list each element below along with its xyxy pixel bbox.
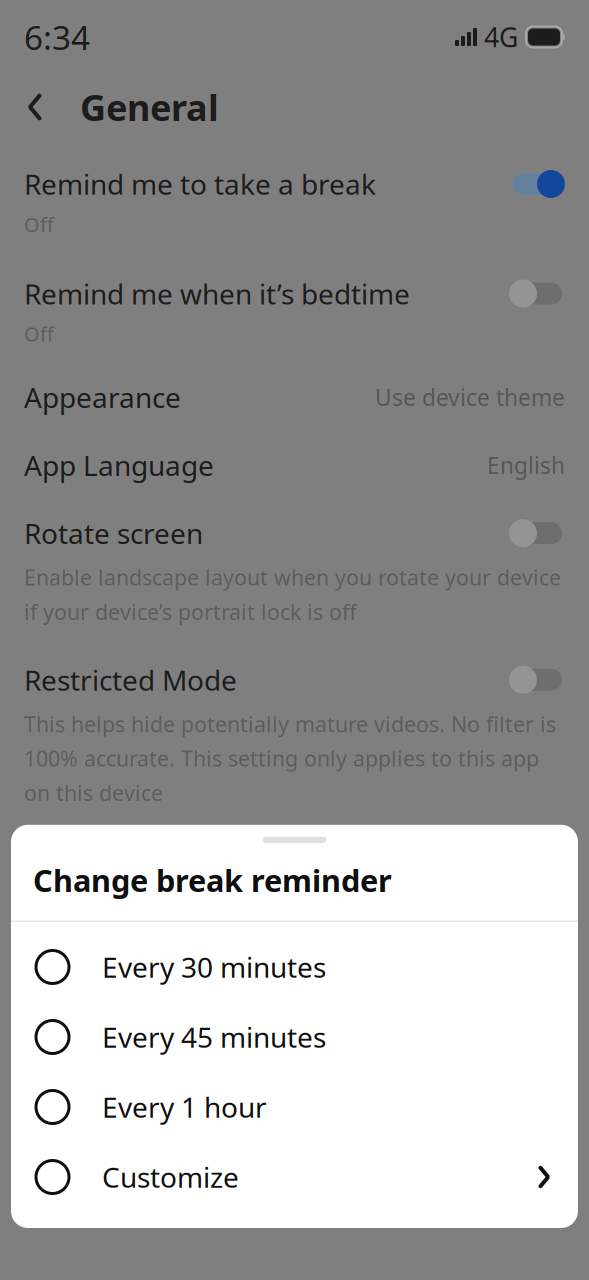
button[interactable]: Remind me when it’s bedtime bbox=[0, 276, 589, 347]
staticText: English bbox=[487, 450, 565, 480]
staticText: Customize bbox=[102, 1158, 239, 1196]
staticText: General bbox=[80, 83, 219, 131]
staticText: Off bbox=[24, 321, 54, 347]
staticText: if your device’s portrait lock is off bbox=[24, 597, 357, 626]
staticText: 6:34 bbox=[24, 15, 90, 59]
staticText: Off bbox=[24, 211, 54, 238]
button[interactable]: Every 45 minutes bbox=[11, 1002, 578, 1072]
button[interactable]: Rotate screen bbox=[0, 515, 589, 551]
button[interactable]: Back bbox=[12, 84, 58, 130]
button[interactable]: Remind me to take a break bbox=[0, 166, 589, 238]
staticText: on this device bbox=[24, 778, 163, 807]
button[interactable]: Restricted Mode bbox=[0, 662, 589, 698]
staticText: 4G bbox=[484, 19, 518, 55]
button[interactable]: Customize bbox=[11, 1142, 578, 1212]
staticText: 100% accurate. This setting only applies… bbox=[24, 744, 539, 772]
staticText: Remind me when it’s bedtime bbox=[24, 275, 410, 312]
staticText: This helps hide potentially mature video… bbox=[24, 710, 556, 738]
button[interactable]: Appearance bbox=[0, 379, 589, 415]
staticText: Every 45 minutes bbox=[102, 1018, 326, 1056]
staticText: Rotate screen bbox=[24, 514, 203, 552]
button[interactable]: Every 30 minutes bbox=[11, 932, 578, 1002]
staticText: App Language bbox=[24, 446, 214, 484]
staticText: Every 1 hour bbox=[102, 1088, 267, 1126]
staticText: Use device theme bbox=[375, 382, 565, 412]
staticText: Remind me to take a break bbox=[24, 165, 376, 203]
staticText: Appearance bbox=[24, 378, 181, 416]
staticText: Enable landscape layout when you rotate … bbox=[24, 563, 561, 591]
staticText: Every 30 minutes bbox=[102, 948, 326, 986]
button[interactable]: Every 1 hour bbox=[11, 1072, 578, 1142]
staticText: Change break reminder bbox=[33, 860, 392, 900]
button[interactable]: App Language bbox=[0, 447, 589, 483]
staticText: Restricted Mode bbox=[24, 661, 237, 698]
